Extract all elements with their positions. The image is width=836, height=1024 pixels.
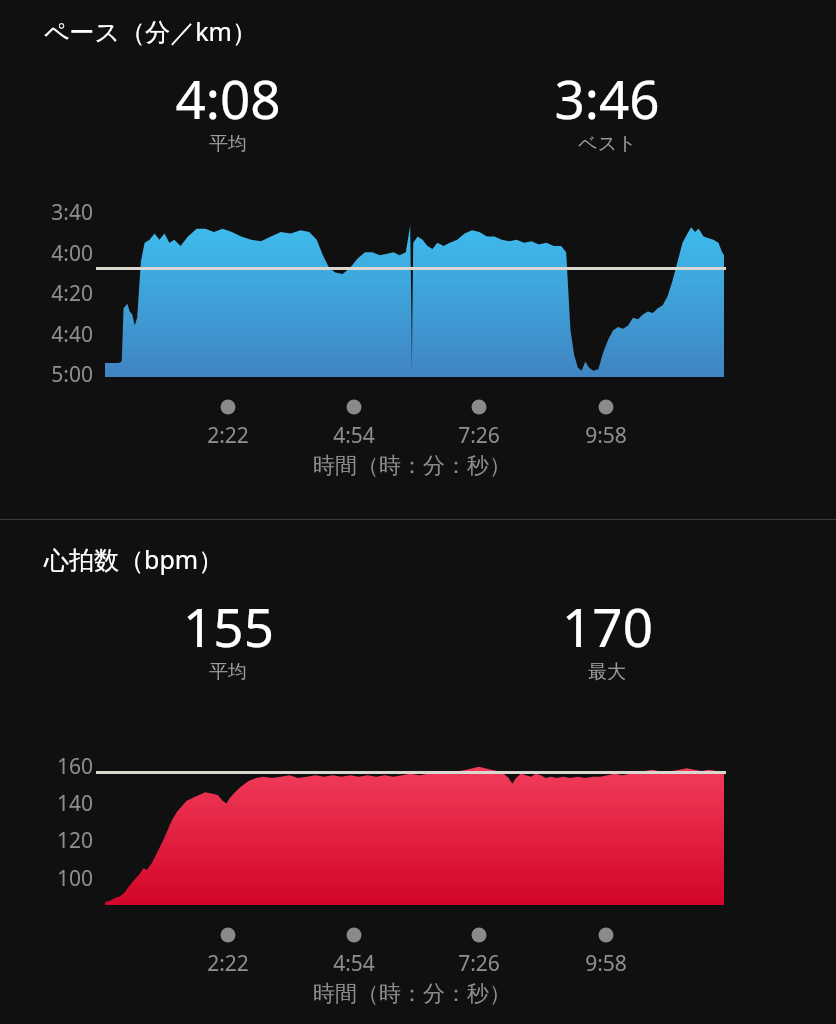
staticText: 9:58 bbox=[561, 421, 651, 450]
staticText: 4:08 bbox=[175, 62, 281, 134]
staticText: 140 bbox=[23, 789, 93, 818]
staticText: 160 bbox=[23, 752, 93, 781]
staticText: 7:26 bbox=[434, 421, 524, 450]
staticText: 5:00 bbox=[23, 360, 93, 389]
staticText: 155 bbox=[183, 590, 274, 662]
staticText: 3:40 bbox=[23, 198, 93, 227]
staticText: 2:22 bbox=[183, 949, 273, 978]
staticText: 170 bbox=[562, 590, 653, 662]
staticText: 100 bbox=[23, 864, 93, 893]
staticText: 平均 bbox=[209, 660, 247, 684]
staticText: ベスト bbox=[578, 132, 637, 156]
button[interactable]: 4:08 bbox=[108, 62, 348, 158]
staticText: ペース（分／km） bbox=[44, 14, 257, 48]
staticText: 4:00 bbox=[23, 239, 93, 268]
button[interactable]: 3:46 bbox=[487, 62, 727, 158]
staticText: 最大 bbox=[588, 660, 626, 684]
staticText: 4:54 bbox=[309, 421, 399, 450]
staticText: 9:58 bbox=[561, 949, 651, 978]
staticText: 3:46 bbox=[554, 62, 660, 134]
button[interactable]: 155 bbox=[108, 590, 348, 686]
staticText: 心拍数（bpm） bbox=[44, 542, 224, 576]
staticText: 7:26 bbox=[434, 949, 524, 978]
staticText: 2:22 bbox=[183, 421, 273, 450]
staticText: 4:40 bbox=[23, 320, 93, 349]
button[interactable]: ペース（分／km） bbox=[44, 14, 257, 48]
staticText: 4:54 bbox=[309, 949, 399, 978]
staticText: 4:20 bbox=[23, 279, 93, 308]
staticText: 120 bbox=[23, 826, 93, 855]
staticText: 平均 bbox=[209, 132, 247, 156]
button[interactable]: 170 bbox=[487, 590, 727, 686]
staticText: 時間（時：分：秒） bbox=[313, 452, 511, 480]
staticText: 時間（時：分：秒） bbox=[313, 980, 511, 1008]
button[interactable]: 心拍数（bpm） bbox=[44, 542, 224, 576]
